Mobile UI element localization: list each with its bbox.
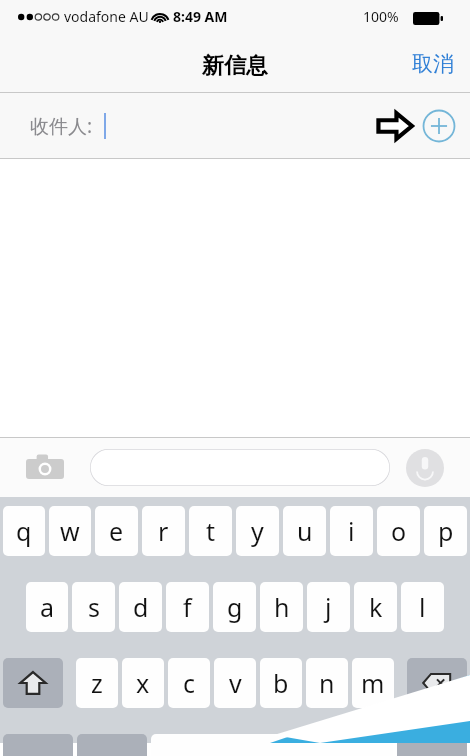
button[interactable]: p (424, 506, 467, 556)
button[interactable]: n (306, 658, 348, 708)
button[interactable]: e (95, 506, 138, 556)
staticText: r (158, 514, 169, 548)
button[interactable]: l (401, 582, 444, 632)
staticText: o (391, 514, 407, 548)
staticText: x (136, 666, 150, 700)
button[interactable]: v (214, 658, 256, 708)
button[interactable]: i (330, 506, 373, 556)
staticText: 8:49 AM (173, 7, 228, 26)
staticText: n (319, 666, 335, 700)
staticText: k (369, 590, 383, 624)
button[interactable]: h (260, 582, 303, 632)
button[interactable]: Add contact (422, 109, 456, 143)
staticText: g (227, 590, 243, 624)
staticText: y (251, 514, 264, 548)
staticText: vodafone AU (64, 7, 149, 26)
staticText: 100% (363, 7, 399, 26)
staticText: v (229, 666, 242, 700)
staticText: m (361, 666, 385, 700)
button[interactable]: Delete (407, 658, 467, 708)
staticText: 新信息 (202, 52, 268, 80)
button[interactable]: Key (397, 734, 467, 756)
button[interactable]: o (377, 506, 420, 556)
button[interactable]: y (236, 506, 279, 556)
staticText: 收件人: (30, 113, 93, 139)
button[interactable]: c (168, 658, 210, 708)
button[interactable]: 取消 (406, 43, 460, 85)
button[interactable]: j (307, 582, 350, 632)
button[interactable]: z (76, 658, 118, 708)
button[interactable]: x (122, 658, 164, 708)
button[interactable]: Shift (3, 658, 63, 708)
staticText: t (206, 514, 216, 548)
staticText: l (419, 590, 426, 624)
button[interactable]: b (260, 658, 302, 708)
staticText: q (16, 514, 32, 548)
button[interactable]: w (49, 506, 91, 556)
button[interactable]: g (213, 582, 256, 632)
button[interactable]: f (166, 582, 209, 632)
staticText: f (183, 590, 192, 624)
staticText: j (325, 590, 332, 624)
button[interactable]: t (189, 506, 232, 556)
staticText: e (109, 514, 124, 548)
staticText: w (60, 514, 80, 548)
button[interactable]: d (119, 582, 162, 632)
button[interactable]: r (142, 506, 185, 556)
button[interactable]: Key (151, 734, 393, 756)
button[interactable]: Voice message (406, 449, 444, 487)
staticText: 取消 (412, 51, 454, 77)
button[interactable]: a (26, 582, 68, 632)
staticText: p (438, 514, 454, 548)
staticText: s (88, 590, 100, 624)
staticText: c (183, 666, 196, 700)
button[interactable]: m (352, 658, 394, 708)
staticText: d (133, 590, 149, 624)
staticText: u (297, 514, 313, 548)
staticText: h (274, 590, 290, 624)
button[interactable]: s (72, 582, 115, 632)
button[interactable]: u (283, 506, 326, 556)
button[interactable]: k (354, 582, 397, 632)
staticText: z (91, 666, 103, 700)
staticText: b (273, 666, 289, 700)
button[interactable]: Camera (22, 448, 68, 488)
button[interactable] (90, 449, 390, 486)
staticText: i (348, 514, 355, 548)
button[interactable]: q (3, 506, 45, 556)
staticText: a (40, 590, 55, 624)
